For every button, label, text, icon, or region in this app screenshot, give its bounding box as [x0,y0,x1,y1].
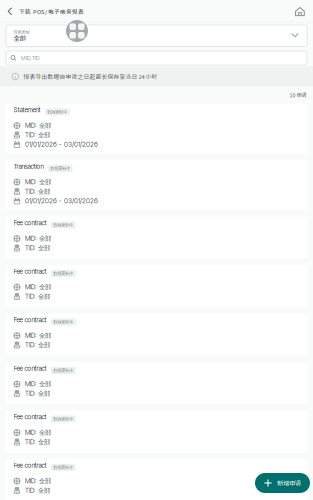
button[interactable]: Fee contract [5,313,308,355]
staticText: TID: 全部 [25,486,50,495]
staticText: MID: 全部 [25,122,51,130]
staticText: TID: 全部 [25,244,50,252]
staticText: MID: 全部 [25,235,51,243]
staticText: 下载 POS / 电子商务报表 [19,7,84,16]
staticText: TID: 全部 [25,341,50,349]
staticText: TID: 全部 [25,389,50,398]
staticText: TID: 全部 [25,131,50,139]
button[interactable]: Transaction [5,160,308,210]
staticText: 全部 [13,33,25,42]
staticText: 新增申请 [277,478,301,488]
staticText: MID, TID [21,55,40,61]
staticText: 数据更新中 [53,270,73,277]
staticText: Statement [13,106,40,114]
staticText: Fee contract [13,462,46,469]
staticText: 数据更新中 [53,464,73,471]
staticText: TID: 全部 [25,438,50,446]
staticText: Fee contract [13,268,46,275]
staticText: MID: 全部 [25,178,51,186]
staticText: 01/01/2026 - 03/01/2026 [25,140,98,148]
button[interactable]: 新增申请 [255,473,310,493]
staticText: 数据更新中 [50,165,70,172]
staticText: TID: 全部 [25,187,50,196]
staticText: 数据更新中 [53,319,73,325]
staticText: MID: 全部 [25,429,51,437]
staticText: TID: 全部 [25,292,50,301]
staticText: Fee contract [13,219,46,227]
staticText: 10 申请 [289,91,306,99]
staticText: MID: 全部 [25,380,51,388]
button[interactable]: Fee contract [5,362,308,404]
staticText: Transaction [13,163,43,170]
staticText: Fee contract [13,365,46,372]
staticText: MID: 全部 [25,332,51,340]
button[interactable]: Home [295,0,313,23]
staticText: 数据更新中 [47,109,67,115]
button[interactable]: Fee contract [5,410,308,452]
button[interactable]: MID, TID [6,51,307,65]
staticText: Fee contract [13,413,46,421]
staticText: MID: 全部 [25,283,51,291]
button[interactable]: Fee contract [5,265,308,307]
button[interactable]: 报表类型 [6,25,307,46]
staticText: MID: 全部 [25,477,51,485]
staticText: 数据更新中 [53,222,73,228]
staticText: 报表导出数据自申请之日起最长保存至当日 24 小时 [24,72,158,81]
staticText: Fee contract [13,316,46,324]
button[interactable]: 下载 POS / 电子商务报表 [0,0,90,23]
staticText: 数据更新中 [53,416,73,422]
staticText: 数据更新中 [53,367,73,374]
staticText: 报表类型 [13,29,29,35]
button[interactable]: Fee contract [5,216,308,258]
button[interactable]: Statement [5,103,308,153]
staticText: 01/01/2026 - 03/01/2026 [25,197,98,205]
button[interactable]: Fee contract [5,459,308,500]
